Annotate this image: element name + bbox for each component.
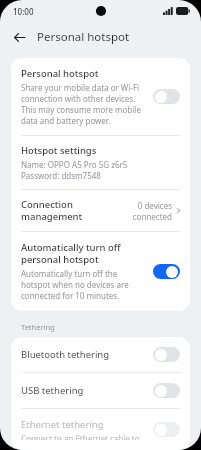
staticText: 0 devices connected xyxy=(130,200,172,222)
button[interactable] xyxy=(153,264,180,279)
staticText: Share your mobile data or Wi-Fi connecti… xyxy=(21,82,145,126)
button[interactable] xyxy=(153,347,180,362)
staticText: Automatically turn off personal hotspot xyxy=(21,241,145,266)
button[interactable]: Personal hotspot xyxy=(11,58,190,135)
staticText: Bluetooth tethering xyxy=(21,348,153,361)
staticText: Connect to an Ethernet cable to share yo… xyxy=(21,433,145,440)
staticText: Automatically turn off the hotspot when … xyxy=(21,268,145,301)
button[interactable]: Automatically turn off personal hotspot xyxy=(11,232,190,311)
button[interactable]: Connection management xyxy=(11,190,190,231)
button[interactable]: Back xyxy=(8,26,30,48)
button[interactable]: Bluetooth tethering xyxy=(11,337,190,372)
staticText: Tethering xyxy=(21,322,55,332)
staticText: Name: OPPO A5 Pro 5G z6r5 xyxy=(21,159,128,170)
staticText: 10:00 xyxy=(13,6,34,17)
staticText: Personal hotspot xyxy=(37,29,130,45)
button[interactable]: Ethernet tethering xyxy=(11,409,190,450)
button[interactable] xyxy=(153,89,180,104)
staticText: Personal hotspot xyxy=(21,67,99,80)
button[interactable] xyxy=(153,383,180,398)
staticText: USB tethering xyxy=(21,384,153,397)
button[interactable]: Hotspot settings xyxy=(11,136,190,189)
staticText: Connection management xyxy=(21,198,124,223)
staticText: Password: ddsm7548 xyxy=(21,170,101,181)
staticText: Hotspot settings xyxy=(21,144,97,157)
button[interactable] xyxy=(153,422,180,437)
button[interactable]: USB tethering xyxy=(11,373,190,408)
staticText: Ethernet tethering xyxy=(21,418,104,431)
